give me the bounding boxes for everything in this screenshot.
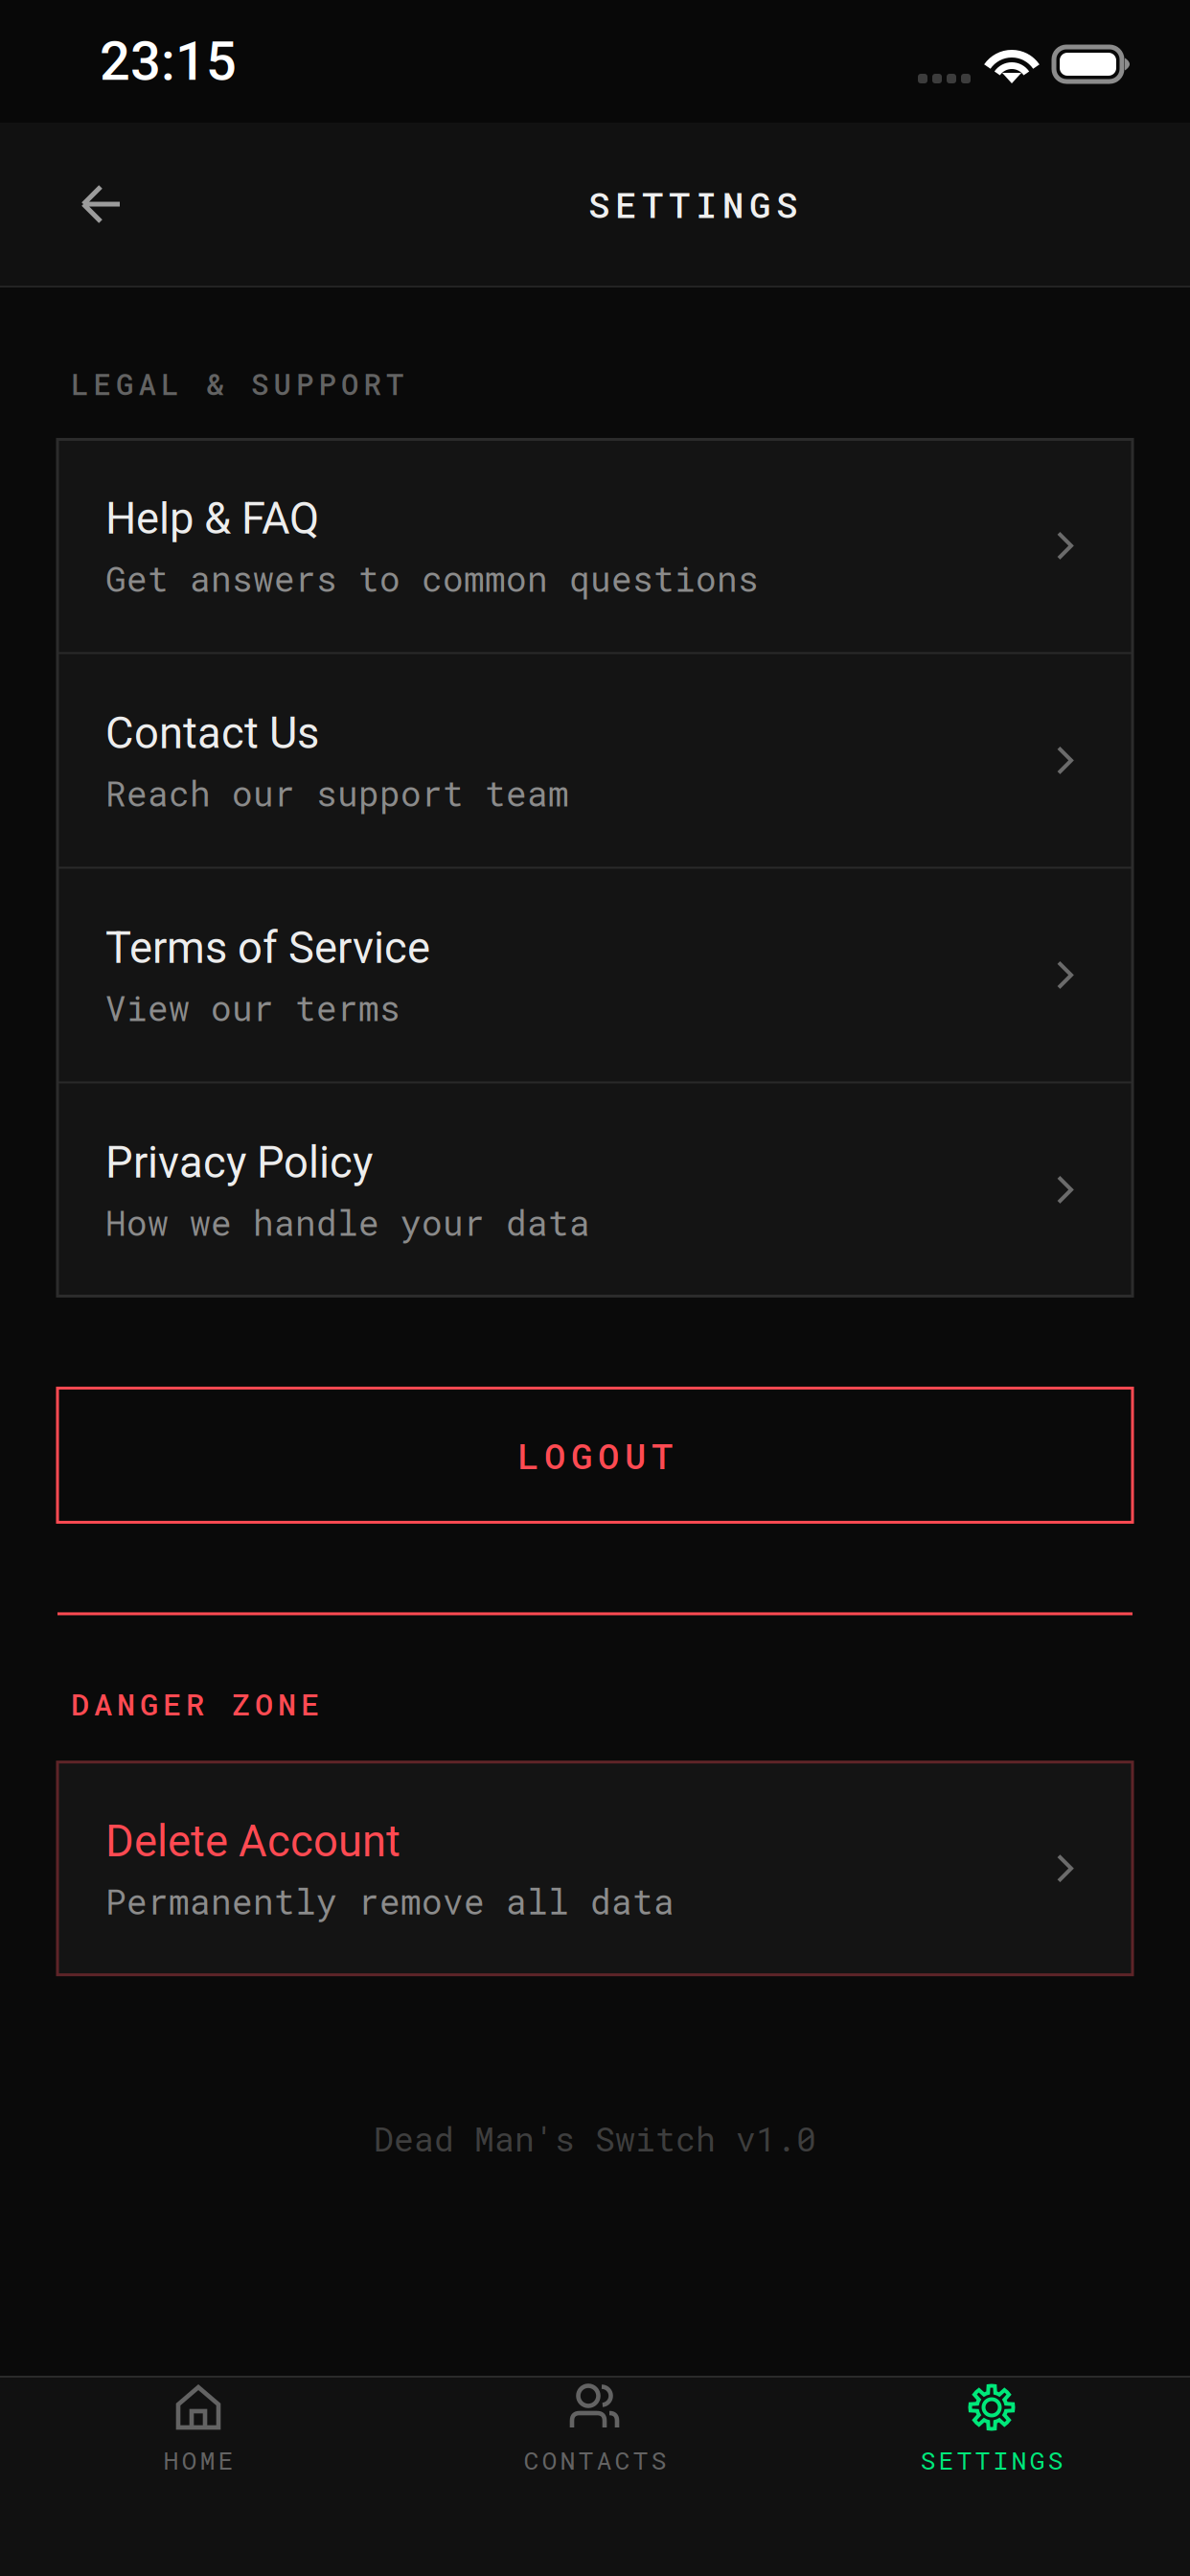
staticText: HOME (163, 2443, 233, 2477)
button[interactable]: Back (56, 158, 148, 250)
button[interactable]: Terms of Service (57, 869, 1133, 1081)
button[interactable]: SETTINGS (793, 2378, 1190, 2576)
button[interactable]: Contact Us (57, 654, 1133, 867)
staticText: Get answers to common questions (105, 556, 759, 601)
button[interactable]: HOME (0, 2378, 397, 2576)
staticText: CONTACTS (524, 2443, 666, 2477)
staticText: LEGAL & SUPPORT (71, 364, 403, 403)
staticText: LOGOUT (517, 1432, 673, 1479)
staticText: Delete Account (105, 1816, 400, 1867)
staticText: Help & FAQ (105, 493, 319, 544)
button[interactable]: Privacy Policy (57, 1083, 1133, 1296)
staticText: View our terms (105, 985, 400, 1030)
staticText: Permanently remove all data (105, 1878, 675, 1924)
staticText: Terms of Service (105, 922, 430, 973)
staticText: DANGER ZONE (71, 1683, 319, 1724)
button[interactable]: Help & FAQ (57, 439, 1133, 652)
staticText: SETTINGS (588, 181, 797, 228)
staticText: SETTINGS (920, 2443, 1063, 2477)
staticText: Privacy Policy (105, 1137, 373, 1188)
button[interactable]: CONTACTS (397, 2378, 793, 2576)
staticText: Contact Us (105, 708, 319, 759)
button[interactable]: LOGOUT (57, 1388, 1133, 1522)
staticText: 23:15 (100, 30, 237, 93)
staticText: How we handle your data (105, 1200, 590, 1245)
staticText: Reach our support team (105, 770, 569, 816)
staticText: Dead Man's Switch v1.0 (374, 2117, 816, 2160)
button[interactable]: Delete Account (57, 1762, 1133, 1975)
